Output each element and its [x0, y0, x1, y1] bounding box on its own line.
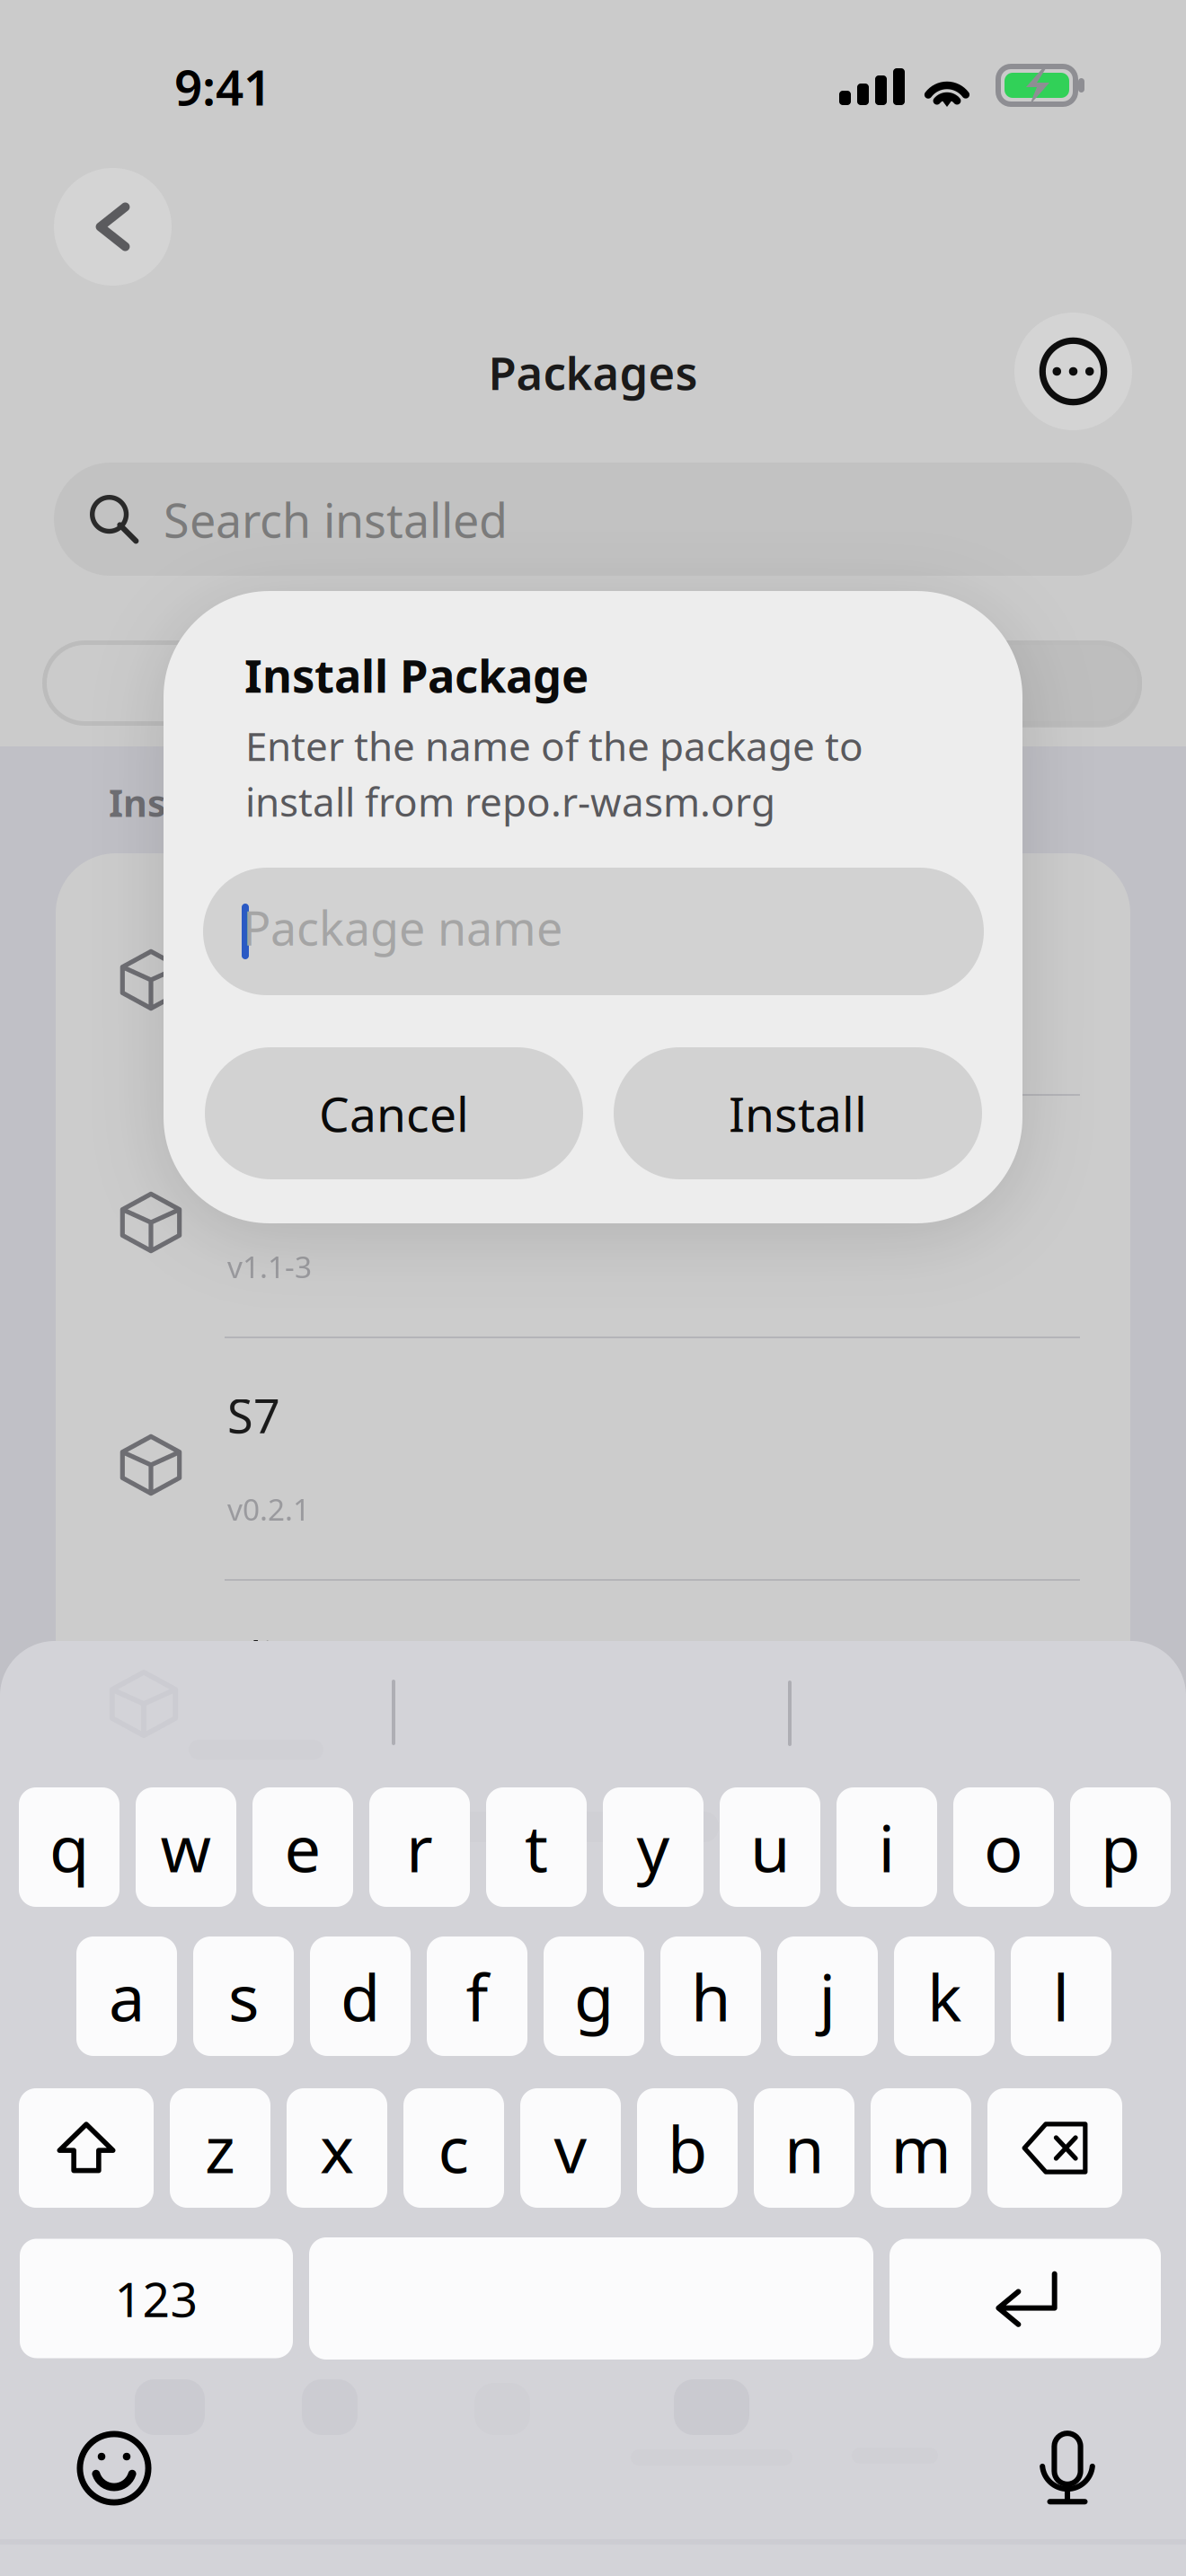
- staticText: Search installed: [164, 489, 508, 551]
- staticText: s: [228, 1953, 259, 2039]
- button[interactable]: u: [720, 1787, 820, 1907]
- button[interactable]: Return: [889, 2239, 1161, 2358]
- button[interactable]: More options: [1014, 313, 1132, 430]
- button[interactable]: c: [403, 2088, 504, 2208]
- staticText: Package name: [243, 896, 562, 958]
- staticText: t: [525, 1804, 548, 1890]
- button[interactable]: Delete: [987, 2088, 1122, 2208]
- button[interactable]: d: [310, 1936, 411, 2056]
- button[interactable]: t: [486, 1787, 587, 1907]
- button[interactable]: b: [637, 2088, 738, 2208]
- staticText: j: [819, 1953, 836, 2039]
- button[interactable]: Shift: [19, 2088, 154, 2208]
- staticText: 9:41: [174, 54, 271, 119]
- staticText: jsonlite: [227, 899, 385, 961]
- staticText: Cancel: [319, 1082, 469, 1145]
- staticText: R6: [227, 1142, 283, 1204]
- button[interactable]: v: [520, 2088, 621, 2208]
- staticText: q: [49, 1804, 89, 1890]
- button[interactable]: Back: [54, 168, 172, 286]
- staticText: p: [1101, 1804, 1140, 1890]
- button[interactable]: f: [427, 1936, 527, 2056]
- button[interactable]: z: [170, 2088, 270, 2208]
- staticText: l: [1053, 1953, 1070, 2039]
- button[interactable]: y: [603, 1787, 704, 1907]
- staticText: g: [574, 1953, 614, 2039]
- staticText: i: [878, 1804, 895, 1890]
- button[interactable]: e: [252, 1787, 353, 1907]
- staticText: Enter the name of the package to: [245, 719, 863, 772]
- button[interactable]: Cancel: [205, 1047, 583, 1179]
- button[interactable]: space: [309, 2237, 873, 2360]
- button[interactable]: m: [871, 2088, 971, 2208]
- button[interactable]: g: [544, 1936, 644, 2056]
- staticText: z: [205, 2105, 235, 2191]
- staticText: e: [284, 1804, 321, 1890]
- staticText: Install: [729, 1082, 867, 1145]
- button[interactable]: h: [660, 1936, 761, 2056]
- staticText: o: [984, 1804, 1023, 1890]
- button[interactable]: jsonlite: [56, 853, 1130, 1094]
- button[interactable]: s: [193, 1936, 294, 2056]
- staticText: Packages: [488, 342, 698, 403]
- button[interactable]: Search installed: [54, 463, 1132, 576]
- staticText: x: [320, 2105, 354, 2191]
- button[interactable]: i: [836, 1787, 937, 1907]
- staticText: d: [341, 1953, 380, 2039]
- button[interactable]: w: [136, 1787, 236, 1907]
- staticText: v0.2.1: [227, 1489, 310, 1529]
- staticText: v: [554, 2105, 587, 2191]
- staticText: S7: [227, 1384, 280, 1446]
- staticText: v1.1-3: [227, 1247, 312, 1286]
- staticText: k: [927, 1953, 961, 2039]
- staticText: m: [891, 2105, 951, 2191]
- staticText: y: [637, 1804, 670, 1890]
- staticText: Installed: [213, 662, 373, 714]
- button[interactable]: Install: [614, 1047, 982, 1179]
- button[interactable]: a: [76, 1936, 177, 2056]
- staticText: r: [406, 1804, 433, 1890]
- staticText: a: [109, 1953, 145, 2039]
- button[interactable]: k: [894, 1936, 995, 2056]
- button[interactable]: x: [287, 2088, 387, 2208]
- button[interactable]: cli: [56, 1581, 1130, 1822]
- button[interactable]: p: [1070, 1787, 1171, 1907]
- staticText: h: [691, 1953, 730, 2039]
- button[interactable]: R6: [56, 1096, 1130, 1337]
- button[interactable]: o: [953, 1787, 1054, 1907]
- staticText: Install Package: [244, 645, 589, 705]
- button[interactable]: j: [777, 1936, 878, 2056]
- button[interactable]: r: [369, 1787, 470, 1907]
- button[interactable]: l: [1011, 1936, 1111, 2056]
- staticText: f: [466, 1953, 488, 2039]
- staticText: b: [668, 2105, 707, 2191]
- button[interactable]: q: [19, 1787, 119, 1907]
- button[interactable]: Dictation: [1018, 2419, 1117, 2518]
- button[interactable]: S7: [56, 1338, 1130, 1579]
- staticText: 123: [115, 2267, 198, 2330]
- staticText: w: [160, 1804, 212, 1890]
- staticText: Installed: [109, 778, 272, 827]
- staticText: u: [750, 1804, 790, 1890]
- staticText: install from repo.r-wasm.org: [245, 775, 775, 828]
- button[interactable]: n: [754, 2088, 854, 2208]
- staticText: cli: [227, 1627, 273, 1689]
- staticText: n: [784, 2105, 824, 2191]
- staticText: c: [438, 2105, 469, 2191]
- button[interactable]: Emoji: [65, 2419, 164, 2518]
- button[interactable]: 123: [20, 2239, 293, 2358]
